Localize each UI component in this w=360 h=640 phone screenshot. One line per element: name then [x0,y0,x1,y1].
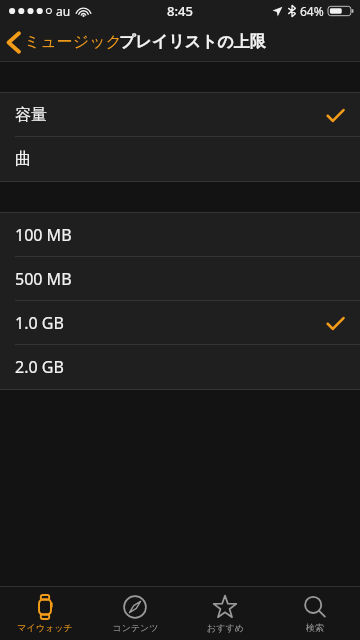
button[interactable]: 2.0 GB [0,345,360,389]
staticText: おすすめ [207,622,244,633]
button[interactable]: 容量 [0,93,360,137]
button[interactable]: マイウォッチ [0,587,90,640]
staticText: 64% [300,3,324,19]
button[interactable]: 検索 [270,587,360,640]
button[interactable]: 1.0 GB [0,301,360,345]
button[interactable]: ミュージック [0,22,128,62]
button[interactable]: コンテンツ [90,587,180,640]
staticText: 2.0 GB [15,356,64,378]
staticText: マイウォッチ [17,622,73,633]
staticText: 500 MB [15,268,72,290]
button[interactable]: 100 MB [0,213,360,257]
button[interactable]: 曲 [0,137,360,181]
staticText: コンテンツ [112,622,159,633]
staticText: 容量 [15,105,47,125]
staticText: ミュージック [24,32,122,52]
staticText: 曲 [15,149,31,169]
staticText: 8:45 [167,2,193,20]
staticText: 100 MB [15,224,72,246]
button[interactable]: 500 MB [0,257,360,301]
button[interactable]: おすすめ [180,587,270,640]
staticText: 1.0 GB [15,312,64,334]
staticText: au [56,3,71,19]
staticText: プレイリストの上限 [119,32,266,52]
staticText: 検索 [306,622,324,633]
